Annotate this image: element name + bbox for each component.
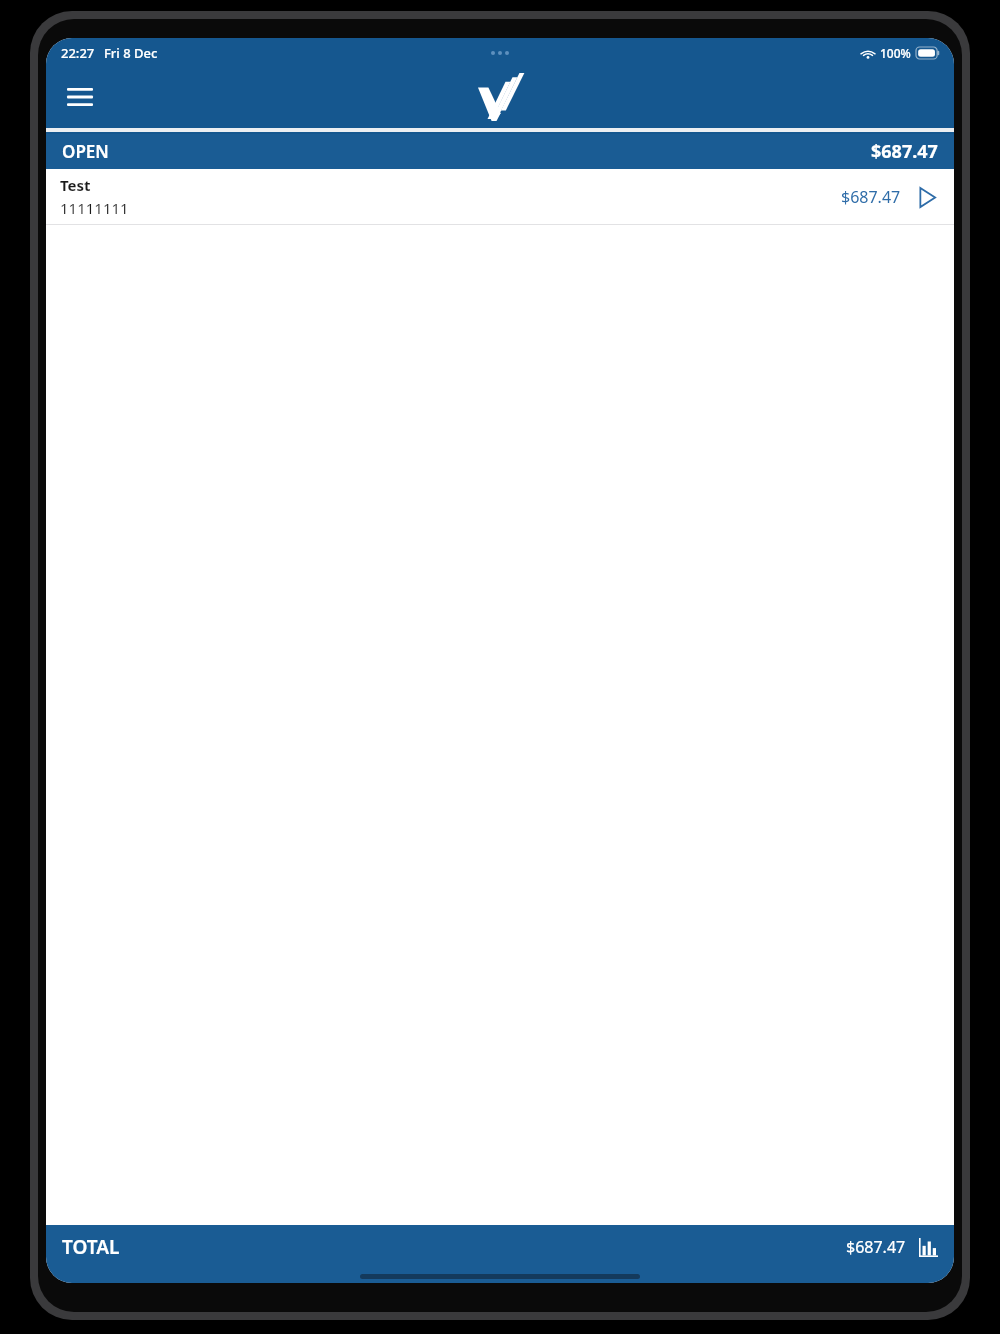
staticText: $687.47 — [846, 1236, 906, 1258]
other: Open invoice — [914, 184, 940, 210]
staticText: Test — [60, 175, 91, 195]
staticText: OPEN — [62, 140, 109, 163]
staticText: 11111111 — [60, 198, 129, 218]
staticText: TOTAL — [62, 1234, 120, 1260]
button[interactable]: Menu — [58, 75, 102, 119]
staticText: Fri 8 Dec — [104, 44, 158, 62]
button[interactable]: OPEN — [46, 134, 954, 169]
staticText: 100% — [880, 45, 911, 61]
button[interactable]: Test — [46, 169, 954, 225]
staticText: $687.47 — [871, 139, 938, 164]
button[interactable]: Reports — [916, 1235, 940, 1259]
staticText: $687.47 — [841, 186, 901, 208]
staticText: 22:27 — [61, 44, 95, 62]
